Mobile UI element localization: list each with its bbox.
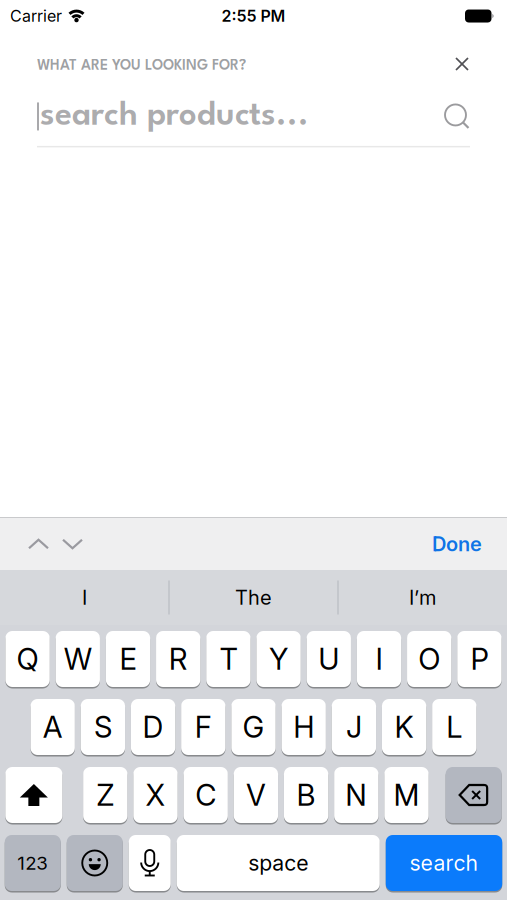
button[interactable]: search [386, 835, 502, 891]
button[interactable]: G [231, 699, 276, 755]
button[interactable]: Q [5, 631, 50, 687]
button[interactable]: Next field [49, 538, 83, 550]
staticText: M [393, 778, 419, 812]
staticText: N [345, 778, 367, 812]
staticText: T [219, 642, 237, 676]
staticText: search products... [40, 100, 309, 132]
staticText: S [94, 710, 112, 744]
button[interactable]: K [382, 699, 426, 755]
staticText: J [346, 710, 362, 744]
staticText: A [43, 710, 63, 744]
staticText: U [318, 642, 339, 676]
button[interactable]: Emoji [67, 835, 123, 891]
staticText: I [82, 586, 87, 609]
button[interactable]: The [169, 570, 338, 625]
staticText: Done [432, 532, 482, 556]
staticText: I’m [409, 586, 436, 609]
staticText: P [470, 642, 488, 676]
staticText: Q [17, 642, 39, 676]
staticText: Y [269, 642, 288, 676]
button[interactable]: J [332, 699, 376, 755]
staticText: E [119, 642, 136, 676]
button[interactable]: 123 [5, 835, 61, 891]
button[interactable]: Delete [446, 767, 502, 823]
staticText: space [248, 850, 308, 876]
staticText: X [145, 778, 165, 812]
staticText: R [169, 642, 188, 676]
button[interactable]: A [30, 699, 75, 755]
button[interactable]: M [384, 767, 429, 823]
button[interactable]: Done [432, 532, 507, 556]
button[interactable]: S [81, 699, 125, 755]
button[interactable]: T [206, 631, 250, 687]
button[interactable]: Z [83, 767, 127, 823]
button[interactable]: R [156, 631, 200, 687]
button[interactable]: Previous field [0, 538, 49, 550]
button[interactable]: F [181, 699, 225, 755]
staticText: The [235, 586, 272, 609]
staticText: F [195, 710, 212, 744]
staticText: 2:55 PM [221, 7, 285, 25]
button[interactable]: L [432, 699, 476, 755]
button[interactable]: U [307, 631, 351, 687]
staticText: L [446, 710, 462, 744]
button[interactable]: H [281, 699, 326, 755]
button[interactable]: I [357, 631, 401, 687]
button[interactable]: C [183, 767, 228, 823]
staticText: 123 [17, 852, 48, 874]
button[interactable]: P [457, 631, 501, 687]
button[interactable]: Dictate [129, 835, 171, 891]
staticText: O [418, 642, 440, 676]
staticText: WHAT ARE YOU LOOKING FOR? [37, 59, 246, 73]
button[interactable]: Close [451, 53, 473, 75]
button[interactable]: O [407, 631, 451, 687]
button[interactable]: space [177, 835, 380, 891]
staticText: K [395, 710, 414, 744]
button[interactable]: B [284, 767, 328, 823]
button[interactable]: I [0, 570, 169, 625]
staticText: H [293, 710, 314, 744]
staticText: V [246, 778, 266, 812]
button[interactable]: E [106, 631, 150, 687]
button[interactable]: D [131, 699, 175, 755]
button[interactable]: Search [444, 103, 470, 129]
staticText: I [375, 642, 382, 676]
button[interactable]: I’m [338, 570, 507, 625]
staticText: C [195, 778, 216, 812]
staticText: Carrier [10, 7, 62, 25]
staticText: B [297, 778, 316, 812]
staticText: W [64, 642, 92, 676]
button[interactable]: N [334, 767, 378, 823]
staticText: G [242, 710, 264, 744]
staticText: search [409, 850, 478, 876]
button[interactable]: Y [256, 631, 301, 687]
button[interactable]: W [56, 631, 100, 687]
staticText: Z [96, 778, 114, 812]
staticText: D [143, 710, 164, 744]
button[interactable]: X [133, 767, 178, 823]
button[interactable]: V [234, 767, 278, 823]
button[interactable]: Shift [5, 767, 62, 823]
